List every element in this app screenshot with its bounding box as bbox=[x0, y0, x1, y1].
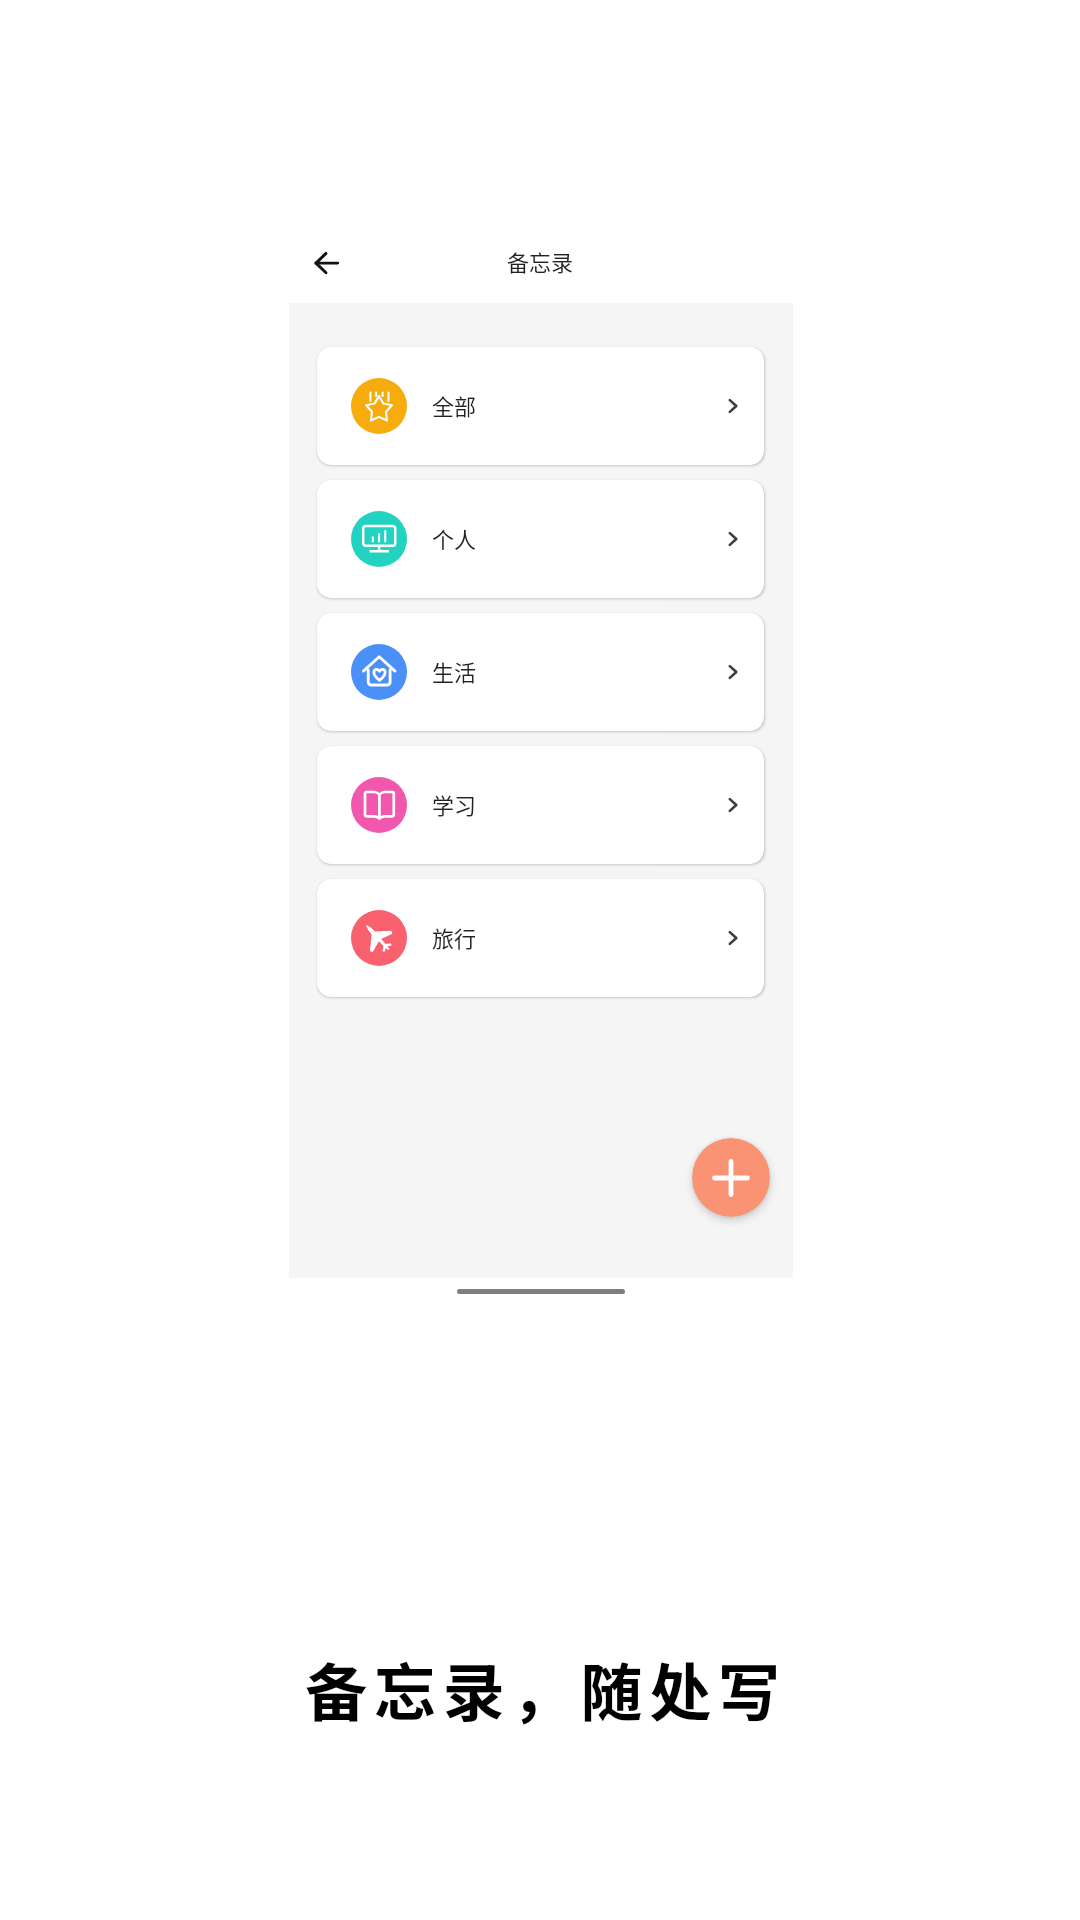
staticText: 备忘录 bbox=[507, 245, 574, 277]
staticText: 个人 bbox=[432, 522, 477, 554]
staticText: 全部 bbox=[432, 389, 477, 421]
staticText: 备忘录，随处写 bbox=[6, 1644, 1080, 1734]
button[interactable]: 旅行 bbox=[317, 879, 764, 997]
button[interactable]: Back bbox=[302, 242, 351, 284]
button[interactable]: Add note bbox=[692, 1138, 770, 1217]
staticText: 学习 bbox=[432, 788, 477, 820]
button[interactable]: 生活 bbox=[317, 613, 764, 731]
button[interactable]: 学习 bbox=[317, 746, 764, 864]
staticText: 旅行 bbox=[432, 921, 477, 953]
staticText: 生活 bbox=[432, 655, 477, 687]
button[interactable]: 全部 bbox=[317, 347, 764, 465]
button[interactable]: 个人 bbox=[317, 480, 764, 598]
